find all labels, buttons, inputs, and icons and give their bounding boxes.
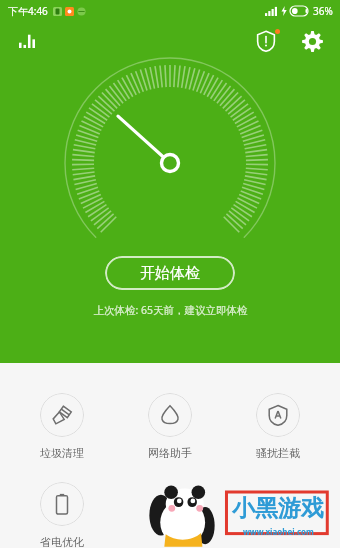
- button[interactable]: 垃圾清理: [16, 393, 108, 460]
- staticText: 上次体检: 65天前，建议立即体检: [93, 303, 248, 317]
- button[interactable]: 省电优化: [16, 482, 108, 548]
- staticText: 下午4:46: [8, 4, 48, 18]
- staticText: 垃圾清理: [40, 446, 84, 460]
- staticText: 小黑游戏: [232, 494, 324, 523]
- staticText: 开始体检: [140, 264, 200, 283]
- button[interactable]: 网络助手: [124, 393, 216, 460]
- staticText: 36%: [313, 4, 333, 18]
- button[interactable]: 开始体检: [105, 256, 235, 290]
- button[interactable]: Settings: [294, 23, 330, 59]
- staticText: www.xiaohei.com: [243, 526, 314, 537]
- staticText: 网络助手: [148, 446, 192, 460]
- staticText: 骚扰拦截: [256, 446, 300, 460]
- staticText: 省电优化: [40, 535, 84, 548]
- button[interactable]: Security: [248, 23, 284, 59]
- button[interactable]: Statistics: [10, 24, 44, 58]
- button[interactable]: 骚扰拦截: [232, 393, 324, 460]
